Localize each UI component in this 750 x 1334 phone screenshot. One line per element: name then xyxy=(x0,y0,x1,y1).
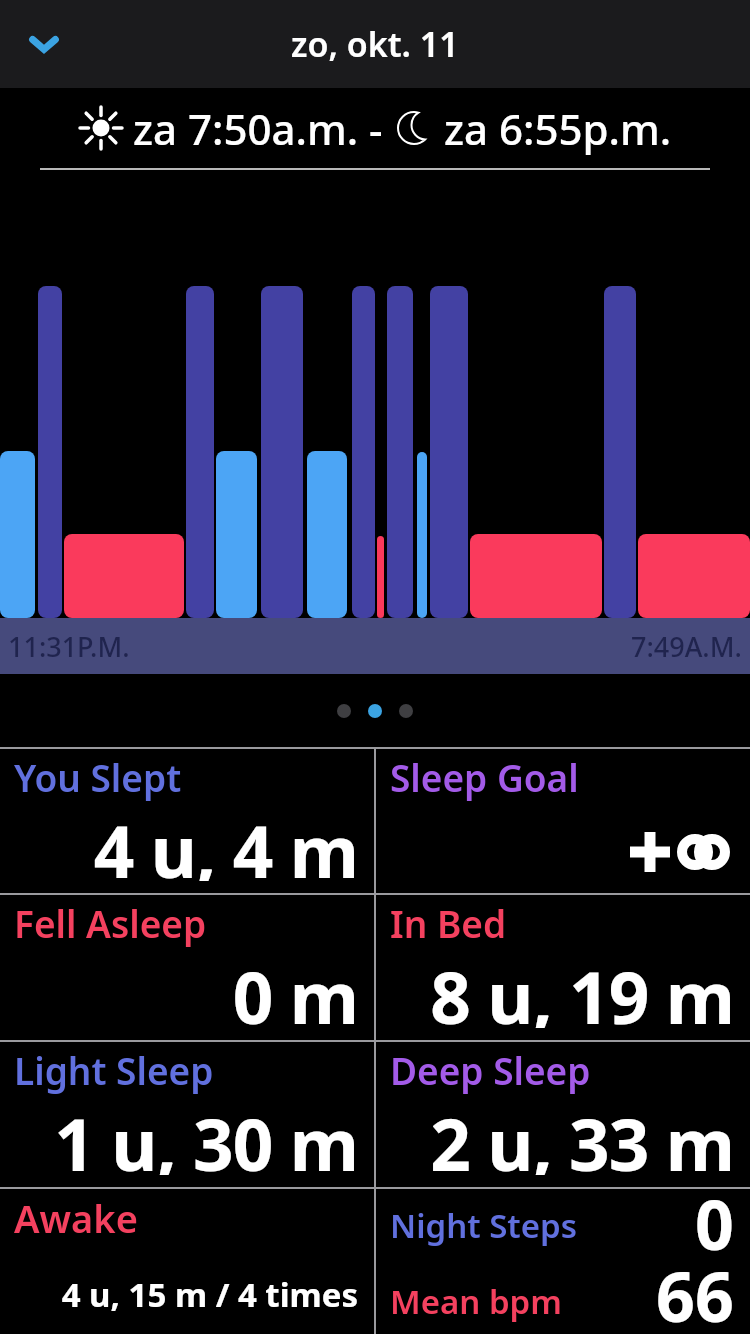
staticText: 4 u, 15 m / 4 times xyxy=(14,1272,358,1317)
staticText: 7:49A.M. xyxy=(631,628,742,665)
staticText: Night Steps xyxy=(390,1203,577,1248)
staticText: Deep Sleep xyxy=(390,1045,591,1095)
staticText: 8 u, 19 m xyxy=(390,948,734,1028)
staticText: 4 u, 4 m xyxy=(14,802,358,881)
staticText: 0 xyxy=(695,1177,734,1270)
staticText: Fell Asleep xyxy=(14,898,207,948)
staticText: Awake xyxy=(14,1192,138,1244)
button[interactable]: In Bed xyxy=(376,895,750,1040)
button[interactable] xyxy=(368,704,382,718)
button[interactable]: You Slept xyxy=(0,749,374,893)
staticText: za 7:50a.m. - xyxy=(133,100,394,157)
staticText: 66 xyxy=(656,1249,734,1334)
staticText: 11:31P.M. xyxy=(8,628,130,665)
staticText: In Bed xyxy=(390,898,507,948)
button[interactable]: Fell Asleep xyxy=(0,895,374,1040)
button[interactable]: Awake xyxy=(0,1189,374,1334)
staticText: 1 u, 30 m xyxy=(14,1095,358,1175)
button[interactable]: Night Steps xyxy=(376,1189,750,1334)
staticText: Light Sleep xyxy=(14,1045,214,1095)
button[interactable] xyxy=(0,0,88,88)
staticText: 2 u, 33 m xyxy=(390,1095,734,1175)
button[interactable]: Sleep Goal xyxy=(376,749,750,893)
staticText: 0 m xyxy=(14,948,358,1028)
button[interactable] xyxy=(337,704,351,718)
button[interactable]: Light Sleep xyxy=(0,1042,374,1187)
staticText: Mean bpm xyxy=(390,1279,562,1324)
button[interactable] xyxy=(399,704,413,718)
staticText: zo, okt. 11 xyxy=(291,21,459,67)
staticText: You Slept xyxy=(14,752,182,802)
staticText: Sleep Goal xyxy=(390,752,579,802)
button[interactable]: Deep Sleep xyxy=(376,1042,750,1187)
staticText: za 6:55p.m. xyxy=(444,100,672,157)
